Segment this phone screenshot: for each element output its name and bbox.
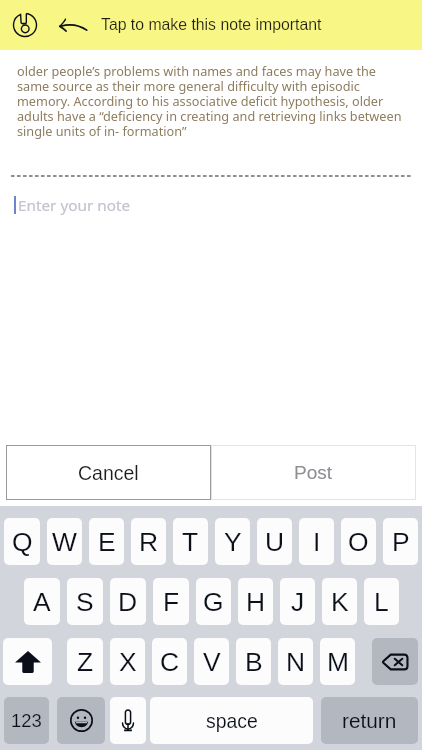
staticText: F — [163, 587, 180, 616]
button[interactable]: space — [150, 697, 313, 744]
button[interactable]: Emoji — [57, 697, 105, 744]
button[interactable]: U — [257, 518, 292, 565]
staticText: K — [331, 587, 349, 616]
button[interactable]: L — [364, 578, 399, 625]
staticText: T — [182, 527, 199, 556]
button[interactable]: C — [152, 638, 187, 685]
button[interactable]: O — [341, 518, 376, 565]
button[interactable]: A — [24, 578, 60, 625]
staticText: Y — [224, 527, 242, 556]
staticText: J — [291, 587, 305, 616]
staticText: U — [265, 527, 285, 556]
button[interactable]: Q — [4, 518, 40, 565]
staticText: S — [76, 587, 94, 616]
button[interactable]: G — [196, 578, 231, 625]
staticText: I — [313, 527, 321, 556]
staticText: A — [33, 587, 51, 616]
button[interactable]: R — [131, 518, 166, 565]
staticText: Post — [294, 462, 333, 483]
button[interactable]: J — [280, 578, 315, 625]
button[interactable]: K — [322, 578, 357, 625]
staticText: V — [203, 647, 221, 676]
button[interactable]: Back — [53, 5, 93, 45]
button[interactable]: E — [89, 518, 124, 565]
button[interactable]: P — [383, 518, 418, 565]
staticText: G — [203, 587, 224, 616]
button[interactable]: M — [320, 638, 355, 685]
button[interactable]: F — [153, 578, 189, 625]
button[interactable]: return — [321, 697, 418, 744]
button[interactable]: H — [238, 578, 273, 625]
staticText: N — [286, 647, 306, 676]
button[interactable]: N — [278, 638, 313, 685]
staticText: Cancel — [78, 462, 139, 484]
button[interactable]: W — [47, 518, 82, 565]
staticText: Q — [12, 527, 33, 556]
button[interactable]: Mark note important — [5, 5, 45, 45]
button[interactable]: V — [194, 638, 229, 685]
staticText: older people’s problems with names and f… — [17, 62, 406, 139]
button[interactable]: I — [299, 518, 334, 565]
button[interactable]: S — [67, 578, 103, 625]
staticText: H — [246, 587, 266, 616]
staticText: O — [348, 527, 369, 556]
button[interactable]: Cancel — [6, 445, 211, 500]
staticText: Tap to make this note important — [101, 16, 322, 34]
staticText: R — [139, 527, 159, 556]
staticText: P — [392, 527, 410, 556]
button[interactable]: Post — [211, 445, 416, 500]
button[interactable]: Dictation — [110, 697, 146, 744]
staticText: W — [52, 527, 77, 556]
staticText: M — [327, 647, 349, 676]
staticText: E — [98, 527, 116, 556]
button[interactable]: X — [110, 638, 145, 685]
staticText: C — [160, 647, 180, 676]
button[interactable]: D — [110, 578, 146, 625]
button[interactable]: Z — [67, 638, 103, 685]
staticText: X — [119, 647, 137, 676]
staticText: space — [206, 710, 258, 732]
staticText: 123 — [11, 710, 42, 731]
button[interactable]: Backspace — [372, 638, 418, 685]
staticText: B — [245, 647, 263, 676]
button[interactable]: T — [173, 518, 208, 565]
staticText: Z — [77, 647, 94, 676]
button[interactable]: 123 — [4, 697, 49, 744]
staticText: D — [118, 587, 138, 616]
staticText: L — [374, 587, 389, 616]
button[interactable]: Shift — [3, 638, 52, 685]
button[interactable]: Y — [215, 518, 250, 565]
button[interactable]: B — [236, 638, 271, 685]
staticText: return — [342, 709, 397, 732]
staticText: Enter your note — [18, 195, 131, 216]
